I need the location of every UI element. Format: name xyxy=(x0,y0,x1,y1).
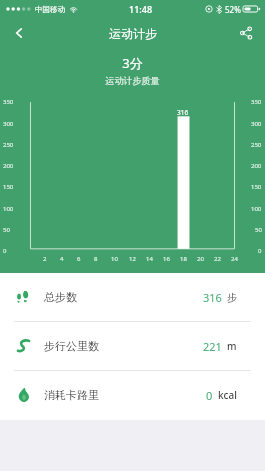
staticText: 0 xyxy=(206,388,213,403)
button[interactable]: 消耗卡路里 xyxy=(0,371,265,419)
staticText: 14 xyxy=(146,255,153,263)
staticText: 总步数 xyxy=(44,290,77,304)
staticText: 18 xyxy=(180,255,187,263)
button[interactable]: Share xyxy=(227,18,265,48)
staticText: 316 xyxy=(203,290,222,305)
staticText: 8 xyxy=(94,255,98,263)
staticText: 350 xyxy=(3,98,14,106)
staticText: 52% xyxy=(225,4,241,15)
button[interactable]: 总步数 xyxy=(0,273,265,321)
staticText: 3分 xyxy=(0,54,265,72)
staticText: 消耗卡路里 xyxy=(44,388,99,402)
staticText: 100 xyxy=(3,205,14,213)
staticText: 150 xyxy=(251,183,262,191)
staticText: 0 xyxy=(3,247,7,255)
staticText: 350 xyxy=(251,98,262,106)
staticText: m xyxy=(227,339,237,353)
staticText: 2 xyxy=(43,255,47,263)
staticText: 11:48 xyxy=(129,3,153,15)
staticText: 步 xyxy=(227,291,237,304)
staticText: 200 xyxy=(3,162,14,170)
staticText: 250 xyxy=(3,141,14,149)
staticText: 中国移动 xyxy=(35,5,65,14)
staticText: 50 xyxy=(3,226,10,234)
staticText: 步行公里数 xyxy=(44,339,99,353)
staticText: 221 xyxy=(203,339,222,354)
staticText: 4 xyxy=(60,255,64,263)
staticText: kcal xyxy=(218,388,237,402)
staticText: 316 xyxy=(177,108,189,117)
staticText: 200 xyxy=(251,162,262,170)
button[interactable]: 步行公里数 xyxy=(0,322,265,370)
staticText: 12 xyxy=(129,255,136,263)
staticText: 20 xyxy=(197,255,204,263)
staticText: 300 xyxy=(3,120,14,128)
staticText: 6 xyxy=(77,255,81,263)
staticText: 250 xyxy=(251,141,262,149)
staticText: 运动计步 xyxy=(109,26,157,41)
staticText: 运动计步质量 xyxy=(0,75,265,86)
staticText: 300 xyxy=(251,120,262,128)
staticText: 100 xyxy=(251,205,262,213)
staticText: 16 xyxy=(163,255,170,263)
staticText: 10 xyxy=(111,255,118,263)
staticText: 24 xyxy=(231,255,238,263)
staticText: 0 xyxy=(258,247,262,255)
staticText: 150 xyxy=(3,183,14,191)
staticText: 50 xyxy=(255,226,262,234)
button[interactable]: Back xyxy=(0,18,38,48)
staticText: 22 xyxy=(214,255,221,263)
